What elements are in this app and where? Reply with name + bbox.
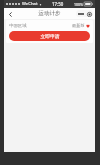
button[interactable]: 中国区域 xyxy=(9,22,90,29)
staticText: 立即申请 xyxy=(40,33,60,39)
button[interactable]: More options xyxy=(77,10,85,17)
button[interactable]: Close mini program xyxy=(86,11,92,17)
staticText: 最新版 xyxy=(72,23,85,28)
staticText: 17:50 xyxy=(52,1,64,7)
button[interactable]: Back xyxy=(5,9,15,19)
button[interactable]: 立即申请 xyxy=(9,31,90,41)
staticText: 运动计步 xyxy=(38,10,61,17)
staticText: WeChat xyxy=(22,1,38,7)
staticText: 100% xyxy=(74,2,83,7)
staticText: 中国区域 xyxy=(9,23,27,29)
